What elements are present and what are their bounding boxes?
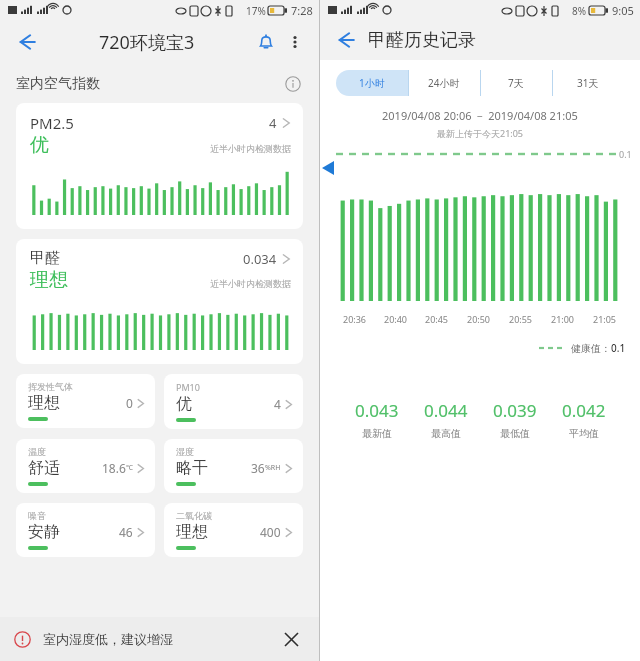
button[interactable]: 1小时 — [336, 70, 408, 96]
staticText: 理想 — [28, 393, 60, 413]
staticText: 20:50 — [467, 313, 491, 325]
staticText: 甲醛历史记录 — [368, 29, 476, 52]
staticText: 挥发性气体 — [28, 381, 73, 392]
staticText: 21:00 — [551, 313, 575, 325]
staticText: 7天 — [508, 76, 524, 90]
staticText: PM2.5 — [30, 113, 74, 133]
staticText: 健康值： — [571, 342, 611, 355]
staticText: 二氧化碳 — [176, 510, 212, 521]
staticText: 0.044 — [424, 399, 468, 422]
staticText: 2019/04/08 20:06 － 2019/04/08 21:05 — [382, 108, 578, 123]
staticText: 室内空气指数 — [16, 75, 100, 93]
staticText: 最低值 — [500, 427, 530, 440]
staticText: 46 — [119, 524, 133, 540]
button[interactable]: Info — [281, 72, 305, 96]
button[interactable]: 24小时 — [408, 70, 480, 96]
staticText: 近半小时内检测数据 — [210, 143, 291, 154]
button[interactable]: More options — [281, 28, 309, 56]
staticText: 17% — [246, 4, 266, 18]
staticText: 20:36 — [343, 313, 367, 325]
staticText: 0.034 — [243, 250, 277, 268]
staticText: 0 — [126, 395, 133, 411]
staticText: 7:28 — [291, 3, 313, 18]
button[interactable]: 31天 — [552, 70, 624, 96]
button[interactable]: 挥发性气体 — [16, 374, 155, 428]
staticText: 31天 — [577, 76, 599, 90]
staticText: PM10 — [176, 381, 200, 393]
staticText: ℃ — [126, 463, 133, 473]
staticText: 0.043 — [355, 399, 399, 422]
staticText: %RH — [265, 463, 281, 473]
staticText: 720环境宝3 — [99, 30, 195, 55]
staticText: 8% — [572, 4, 587, 18]
button[interactable]: Notifications — [251, 27, 281, 57]
staticText: 36 — [251, 460, 265, 476]
button[interactable]: 噪音 — [16, 503, 155, 557]
button[interactable]: 7天 — [480, 70, 552, 96]
button[interactable]: Back — [330, 24, 362, 56]
staticText: 噪音 — [28, 510, 46, 521]
staticText: 理想 — [30, 268, 68, 292]
staticText: 平均值 — [569, 427, 599, 440]
staticText: 4 — [274, 396, 281, 412]
staticText: 21:05 — [593, 313, 617, 325]
button[interactable]: PM2.5 — [16, 103, 303, 229]
button[interactable]: 甲醛 — [16, 239, 303, 364]
button[interactable]: 湿度 — [164, 439, 303, 493]
staticText: 优 — [30, 133, 49, 157]
staticText: 0.039 — [493, 399, 537, 422]
staticText: 最高值 — [431, 427, 461, 440]
staticText: 0.1 — [611, 341, 626, 355]
staticText: 优 — [176, 394, 192, 414]
staticText: 安静 — [28, 522, 60, 542]
button[interactable]: 温度 — [16, 439, 155, 493]
staticText: 湿度 — [176, 446, 194, 457]
staticText: 20:55 — [509, 313, 533, 325]
staticText: 18.6 — [102, 460, 126, 476]
staticText: 0.042 — [562, 399, 606, 422]
button[interactable]: Dismiss — [277, 625, 305, 653]
staticText: 温度 — [28, 446, 46, 457]
staticText: 理想 — [176, 522, 208, 542]
staticText: 1小时 — [359, 76, 385, 90]
button[interactable]: PM10 — [164, 374, 303, 429]
staticText: 舒适 — [28, 458, 60, 478]
staticText: 近半小时内检测数据 — [210, 278, 291, 289]
staticText: 最新上传于今天21:05 — [437, 127, 524, 139]
staticText: 略干 — [176, 458, 208, 478]
staticText: 20:45 — [425, 313, 449, 325]
staticText: 甲醛 — [30, 249, 60, 268]
staticText: 最新值 — [362, 427, 392, 440]
button[interactable]: Back — [10, 25, 44, 59]
staticText: 室内湿度低，建议增湿 — [43, 631, 173, 647]
staticText: 20:40 — [384, 313, 408, 325]
staticText: 0.1 — [619, 148, 632, 160]
staticText: 400 — [260, 524, 281, 540]
button[interactable]: 室内湿度低，建议增湿 — [0, 617, 319, 661]
staticText: 4 — [269, 114, 277, 132]
staticText: 9:05 — [612, 3, 634, 18]
button[interactable]: 二氧化碳 — [164, 503, 303, 557]
staticText: 24小时 — [428, 76, 460, 90]
